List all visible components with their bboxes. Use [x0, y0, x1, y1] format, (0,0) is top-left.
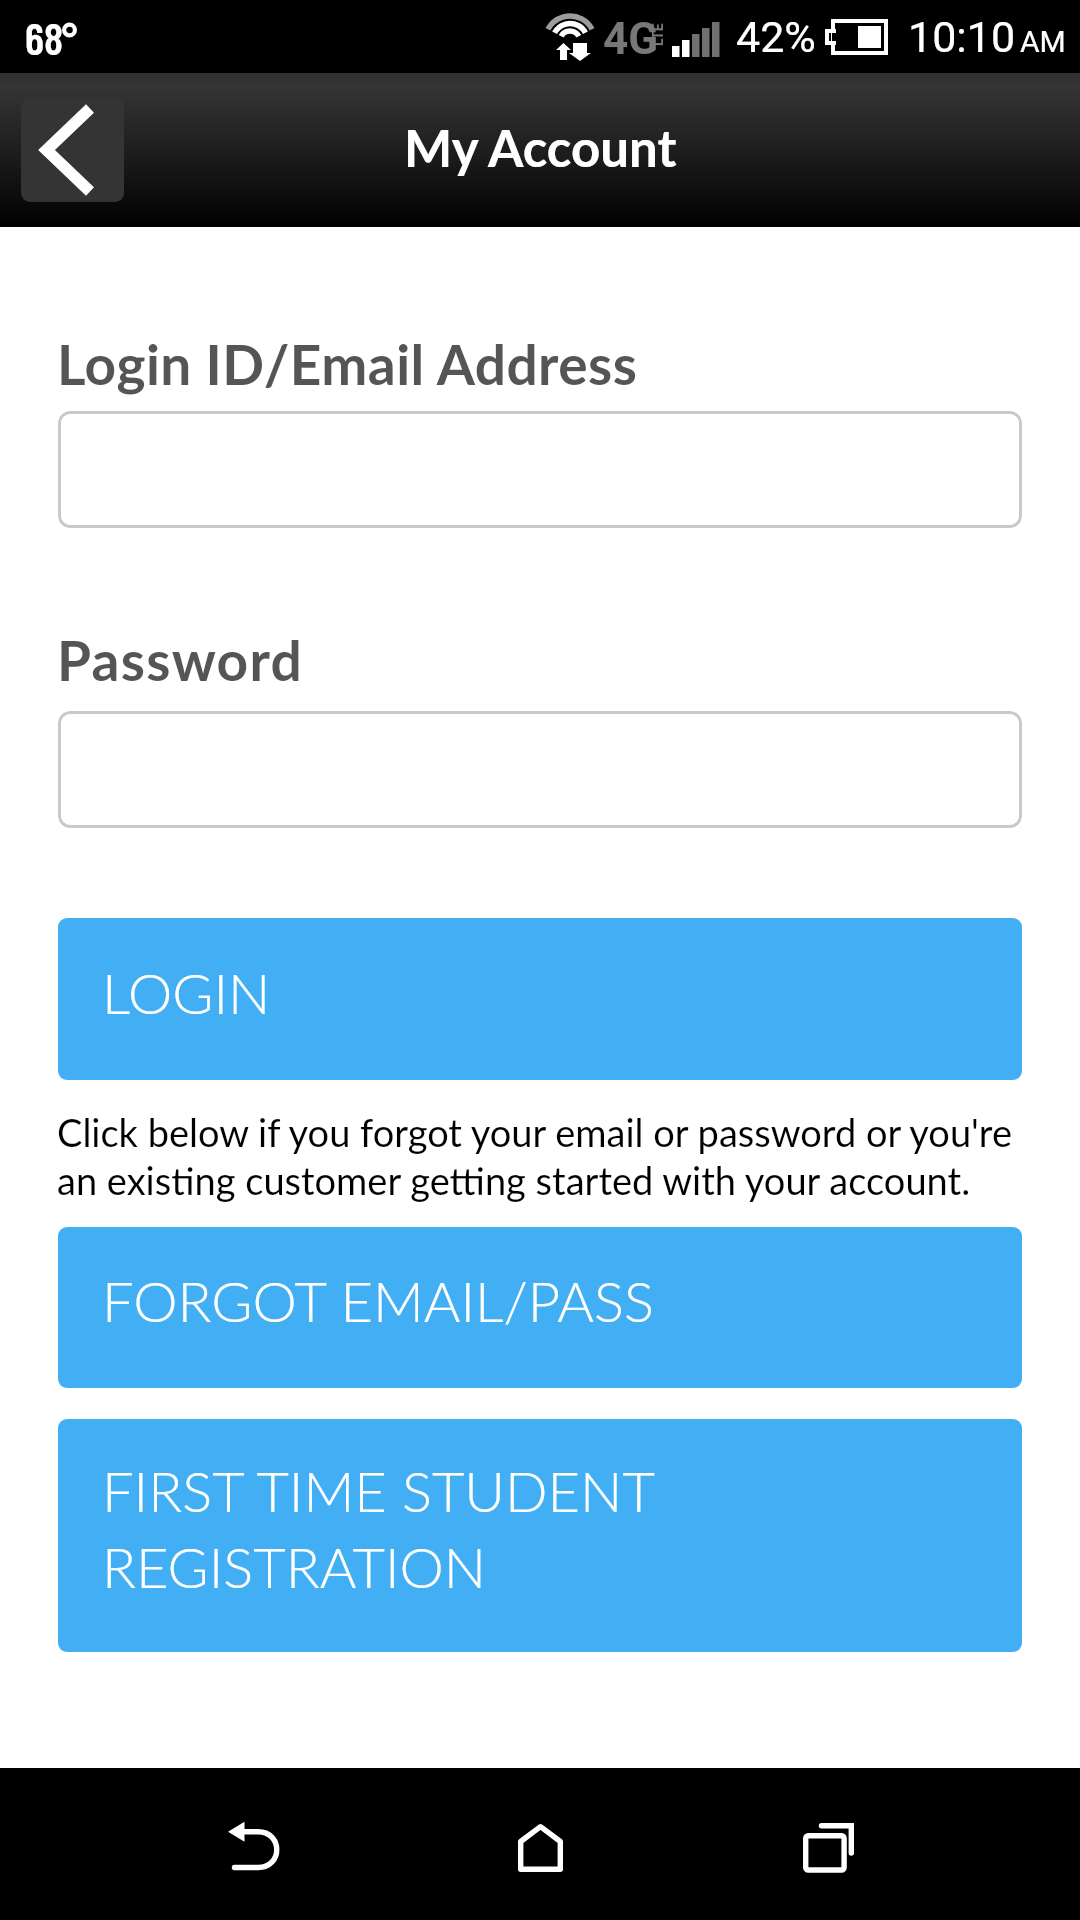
- staticText: 4G: [603, 13, 659, 57]
- button[interactable]: Back: [172, 1768, 332, 1920]
- button[interactable]: Recent apps: [748, 1768, 908, 1920]
- button[interactable]: [58, 711, 1022, 828]
- button[interactable]: FORGOT EMAIL/PASS: [58, 1227, 1022, 1388]
- staticText: AM: [1020, 24, 1066, 59]
- button[interactable]: LOGIN: [58, 918, 1022, 1080]
- staticText: LOGIN: [102, 959, 271, 1026]
- staticText: FIRST TIME STUDENT REGISTRATION: [102, 1457, 978, 1600]
- staticText: Login ID/Email Address: [57, 331, 638, 397]
- button[interactable]: Navigate back: [21, 98, 124, 202]
- staticText: FORGOT EMAIL/PASS: [102, 1267, 654, 1334]
- staticText: My Account: [404, 117, 677, 178]
- staticText: 42%: [736, 12, 816, 62]
- button[interactable]: FIRST TIME STUDENT REGISTRATION: [58, 1419, 1022, 1652]
- staticText: Click below if you forgot your email or …: [57, 1109, 1027, 1203]
- staticText: LTE: [650, 23, 666, 46]
- staticText: Password: [57, 627, 304, 693]
- button[interactable]: [58, 411, 1022, 528]
- button[interactable]: Home: [460, 1768, 620, 1920]
- staticText: 10:10: [908, 12, 1016, 62]
- staticText: 68: [25, 11, 63, 64]
